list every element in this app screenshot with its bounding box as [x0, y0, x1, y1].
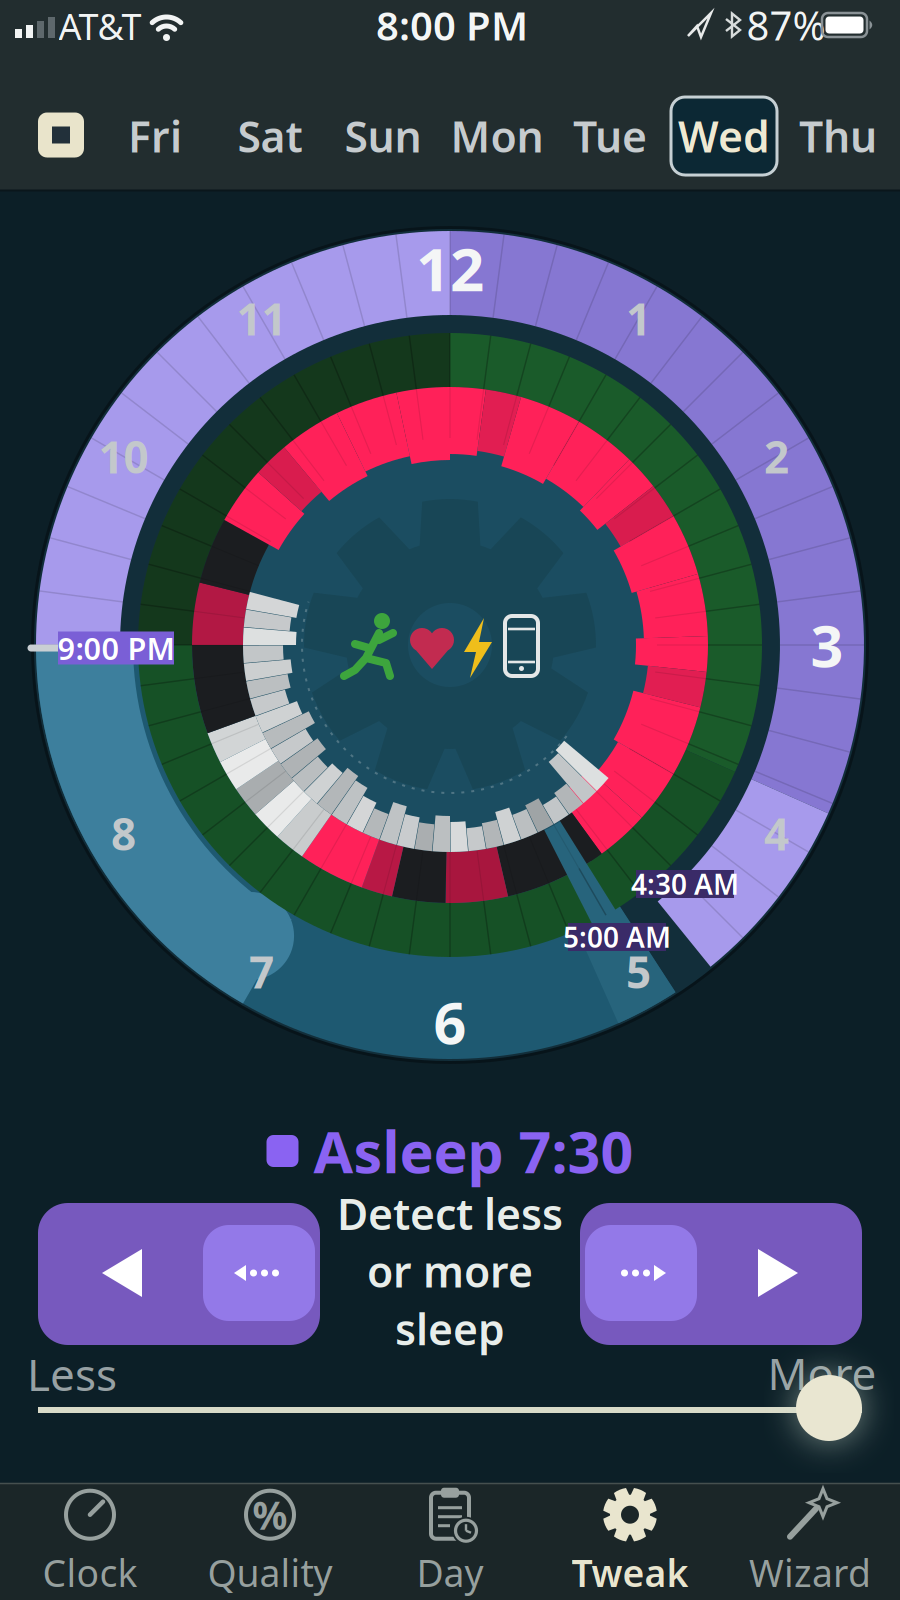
staticText: Asleep 7:30 [313, 1113, 633, 1189]
button[interactable]: Mon [445, 97, 549, 175]
button[interactable]: Sleep detection sensitivity [796, 1375, 862, 1441]
staticText: Sat [237, 108, 302, 164]
button[interactable]: Detect less sleep [38, 1203, 320, 1345]
staticText: Tweak [571, 1548, 688, 1597]
staticText: 11 [236, 289, 286, 348]
staticText: 8:00 PM [376, 0, 528, 51]
staticText: 8 [111, 804, 136, 863]
staticText: 2 [764, 427, 789, 486]
staticText: 87% [746, 0, 825, 51]
staticText: 4 [764, 804, 789, 863]
staticText: Sun [344, 108, 421, 164]
staticText: 9:00 PM [57, 628, 174, 668]
staticText: 1 [626, 289, 651, 348]
button[interactable]: Sat [218, 97, 322, 175]
button[interactable]: Calendar [38, 112, 84, 157]
staticText: % [252, 1489, 287, 1540]
staticText: Clock [42, 1548, 137, 1597]
button[interactable]: Thu [786, 97, 890, 175]
staticText: 4:30 AM [631, 865, 739, 903]
staticText: 10 [98, 427, 148, 486]
staticText: Wed [678, 108, 770, 164]
button[interactable]: Wizard [722, 1486, 898, 1598]
staticText: Less [27, 1345, 117, 1403]
staticText: Thu [799, 108, 877, 164]
staticText: Detect less [337, 1185, 563, 1242]
button[interactable]: Fri [103, 97, 207, 175]
button[interactable]: Clock [2, 1486, 178, 1598]
staticText: 7 [249, 942, 274, 1001]
staticText: Fri [128, 108, 182, 164]
staticText: Wizard [749, 1548, 871, 1597]
staticText: AT&T [58, 2, 141, 50]
button[interactable]: Tue [558, 97, 662, 175]
button[interactable]: % [182, 1486, 358, 1598]
staticText: 6 [433, 984, 466, 1060]
staticText: sleep [395, 1300, 505, 1357]
button[interactable]: Sun [331, 97, 435, 175]
staticText: Mon [450, 108, 543, 164]
staticText: 12 [416, 228, 484, 308]
staticText: Quality [207, 1548, 332, 1597]
button[interactable]: Wed [671, 97, 777, 175]
staticText: Tue [573, 108, 647, 164]
staticText: 5:00 AM [563, 918, 671, 956]
button[interactable]: Tweak [542, 1486, 718, 1598]
staticText: 5 [626, 942, 651, 1001]
staticText: More [767, 1344, 876, 1402]
staticText: Day [416, 1548, 483, 1597]
button[interactable]: Day [362, 1486, 538, 1598]
button[interactable]: Detect more sleep [580, 1203, 862, 1345]
staticText: or more [367, 1243, 533, 1299]
staticText: 3 [810, 607, 843, 683]
